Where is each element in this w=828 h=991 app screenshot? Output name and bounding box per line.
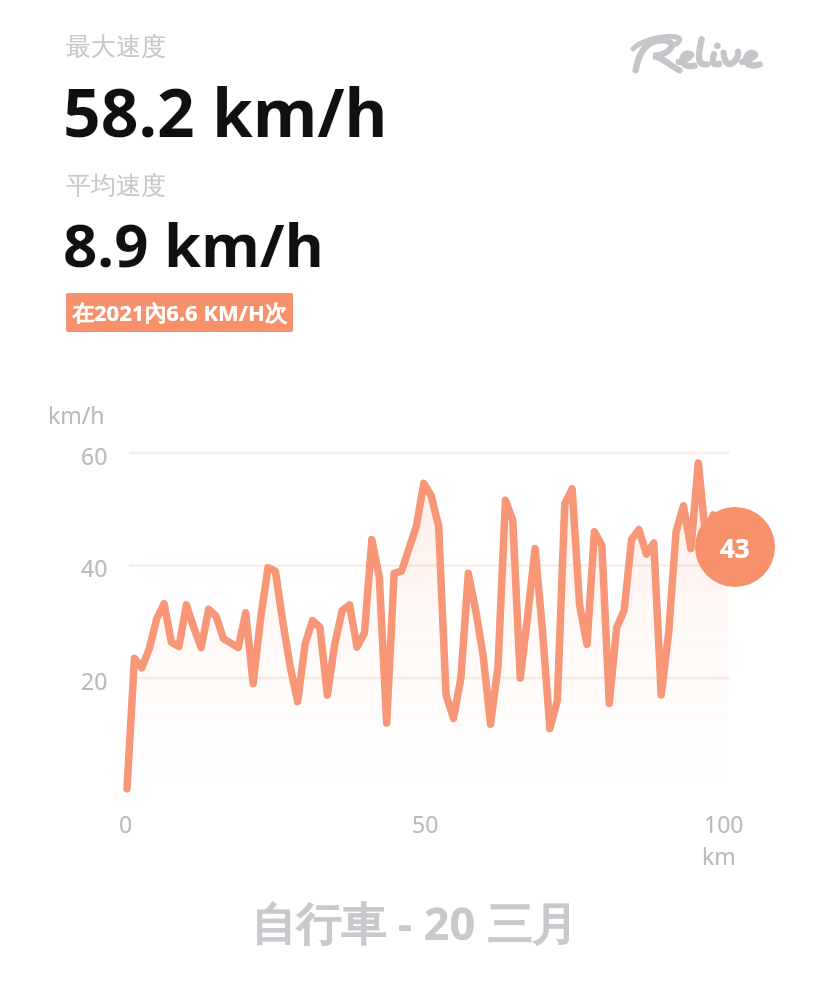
staticText: 平均速度 [66, 170, 166, 201]
staticText: 在2021內6.6 KM/H次 [72, 297, 287, 327]
button[interactable]: Relive [618, 26, 794, 86]
staticText: 20 [81, 665, 108, 696]
staticText: 60 [81, 440, 108, 471]
staticText: 50 [412, 808, 439, 839]
staticText: km/h [48, 399, 105, 430]
staticText: 43 [720, 530, 750, 565]
staticText: 100 [704, 808, 744, 839]
staticText: km [702, 840, 736, 871]
staticText: 40 [81, 552, 108, 583]
staticText: 自行車 - 20 三月 [0, 892, 828, 953]
staticText: 0 [119, 808, 133, 839]
button[interactable]: 在2021內6.6 KM/H次 [66, 293, 293, 332]
staticText: 最大速度 [66, 31, 166, 62]
staticText: 8.9 km/h [63, 203, 324, 285]
staticText: 58.2 km/h [63, 66, 388, 156]
